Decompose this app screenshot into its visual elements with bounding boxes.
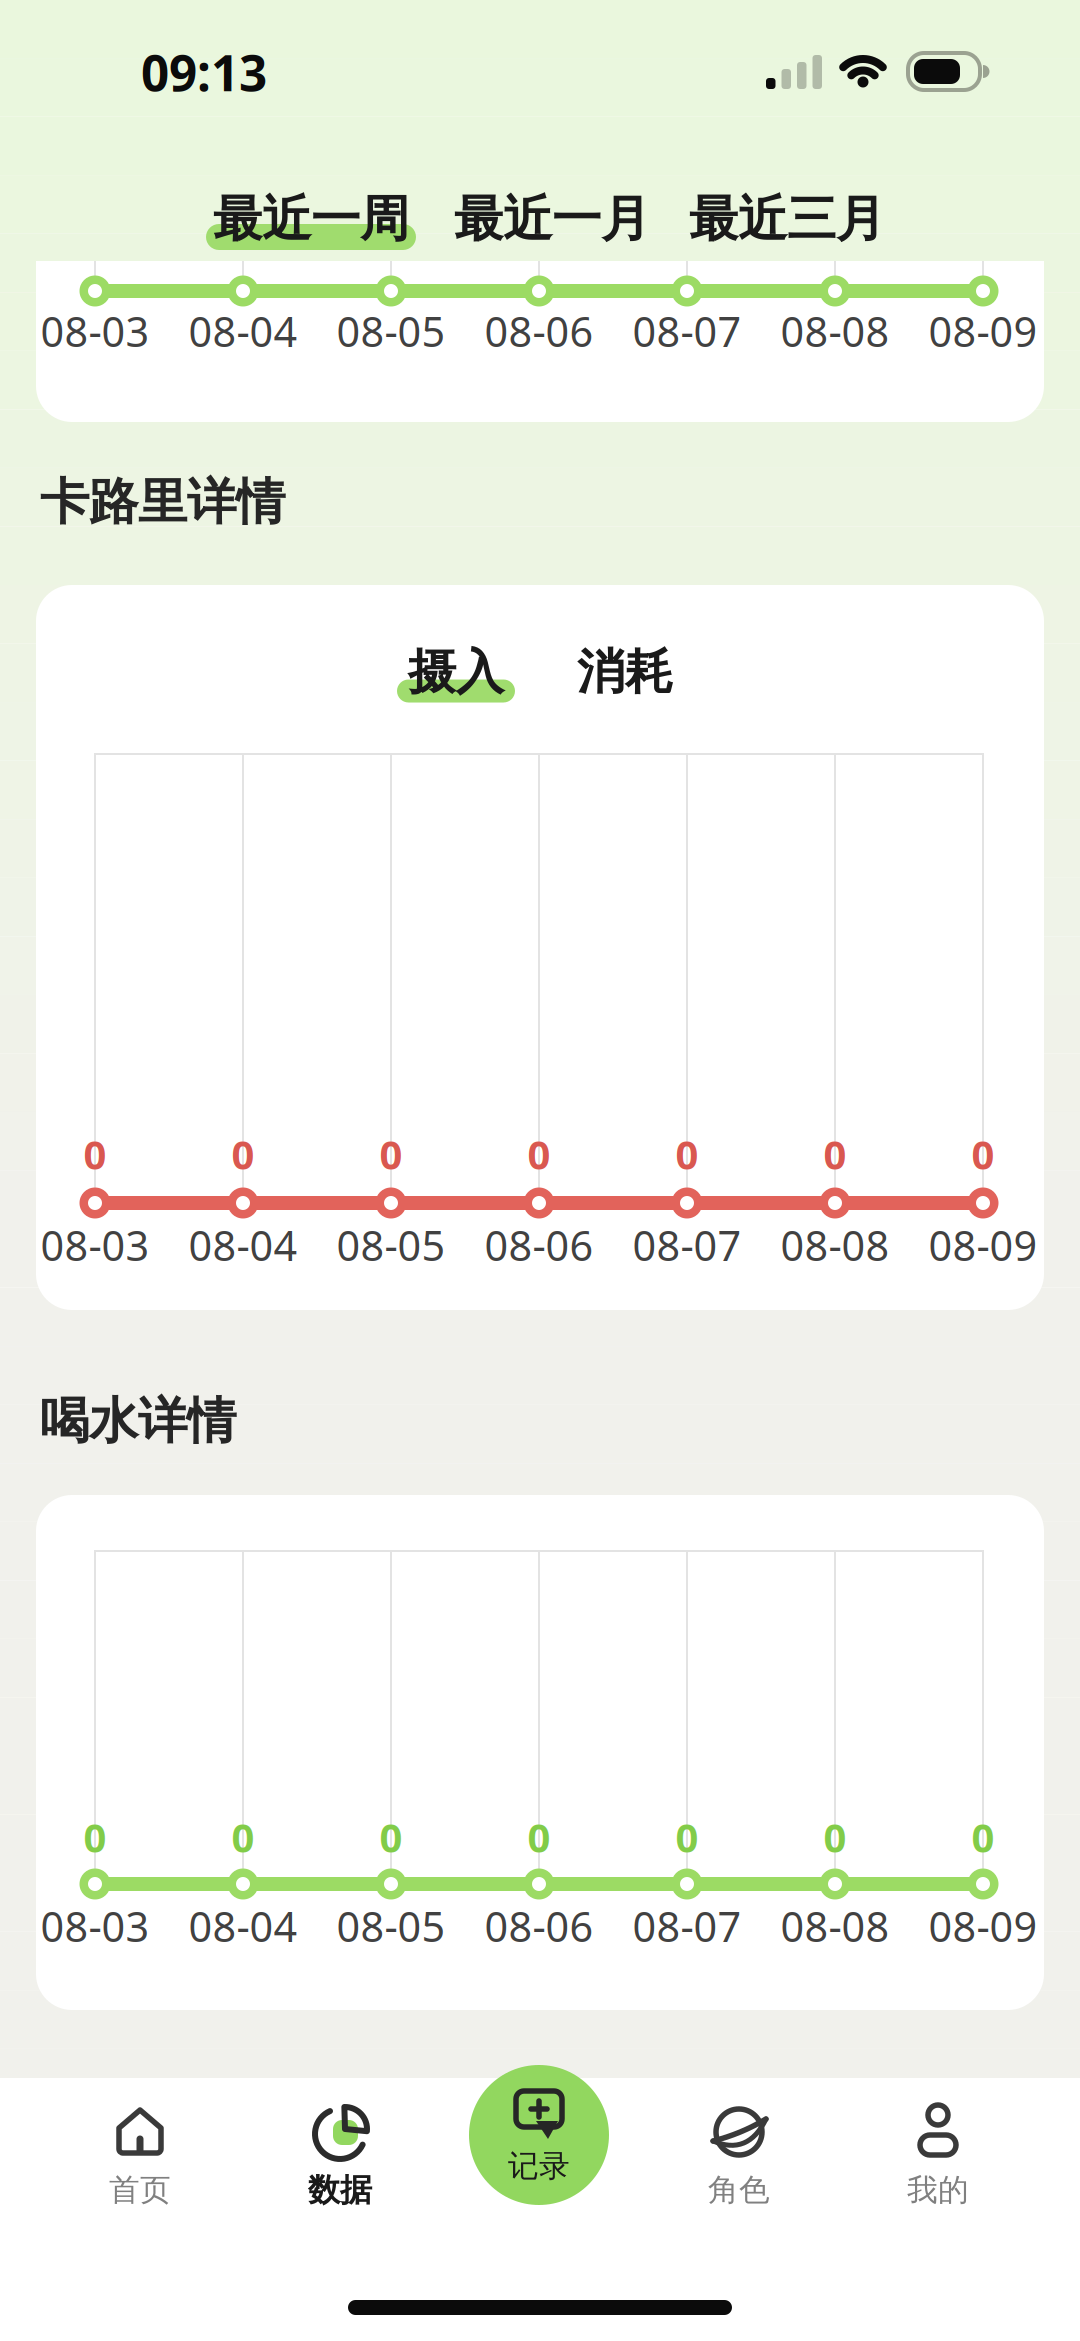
staticText: 08-09 <box>928 1899 1037 1953</box>
button[interactable]: 消耗 <box>545 632 705 712</box>
staticText: 0 <box>379 1810 402 1863</box>
staticText: 08-03 <box>40 1899 149 1953</box>
staticText: 记录 <box>508 2147 570 2185</box>
staticText: 0 <box>379 1127 402 1180</box>
staticText: 喝水详情 <box>40 1391 236 1451</box>
staticText: 08-07 <box>632 1218 741 1272</box>
staticText: 数据 <box>308 2170 372 2210</box>
button[interactable]: 数据 <box>265 2085 415 2215</box>
staticText: 08-06 <box>484 1899 593 1953</box>
staticText: 0 <box>823 1127 846 1180</box>
button[interactable]: 最近一月 <box>442 180 662 258</box>
button[interactable]: 摄入 <box>376 632 536 712</box>
staticText: 08-03 <box>40 304 149 358</box>
staticText: 0 <box>675 1127 698 1180</box>
staticText: 08-07 <box>632 1899 741 1953</box>
staticText: 0 <box>231 1127 254 1180</box>
staticText: 08-04 <box>188 304 297 358</box>
staticText: 我的 <box>907 2171 969 2209</box>
staticText: 08-05 <box>336 1899 445 1953</box>
staticText: 08-09 <box>928 304 1037 358</box>
staticText: 08-03 <box>40 1218 149 1272</box>
staticText: 摄入 <box>408 642 504 701</box>
staticText: 0 <box>971 1810 994 1863</box>
button[interactable]: 记录 <box>464 2063 614 2211</box>
staticText: 08-08 <box>780 1899 889 1953</box>
staticText: 0 <box>675 1810 698 1863</box>
staticText: 最近三月 <box>689 189 885 249</box>
staticText: 08-06 <box>484 1218 593 1272</box>
staticText: 08-07 <box>632 304 741 358</box>
staticText: 08-09 <box>928 1218 1037 1272</box>
staticText: 0 <box>527 1810 550 1863</box>
button[interactable]: 角色 <box>664 2085 814 2215</box>
staticText: 08-05 <box>336 304 445 358</box>
staticText: 0 <box>971 1127 994 1180</box>
button[interactable]: 首页 <box>65 2085 215 2215</box>
staticText: 最近一周 <box>213 189 409 249</box>
button[interactable]: 最近三月 <box>677 180 897 258</box>
staticText: 09:13 <box>141 39 267 105</box>
staticText: 卡路里详情 <box>40 472 285 532</box>
staticText: 08-08 <box>780 304 889 358</box>
staticText: 0 <box>823 1810 846 1863</box>
staticText: 首页 <box>109 2171 171 2209</box>
staticText: 0 <box>527 1127 550 1180</box>
staticText: 0 <box>83 1810 106 1863</box>
staticText: 0 <box>231 1810 254 1863</box>
staticText: 0 <box>83 1127 106 1180</box>
staticText: 角色 <box>708 2171 770 2209</box>
button[interactable]: 最近一周 <box>201 180 421 258</box>
button[interactable]: 我的 <box>863 2085 1013 2215</box>
staticText: 08-06 <box>484 304 593 358</box>
staticText: 08-04 <box>188 1899 297 1953</box>
staticText: 08-04 <box>188 1218 297 1272</box>
staticText: 最近一月 <box>454 189 650 249</box>
staticText: 08-05 <box>336 1218 445 1272</box>
staticText: 08-08 <box>780 1218 889 1272</box>
staticText: 消耗 <box>577 642 673 701</box>
